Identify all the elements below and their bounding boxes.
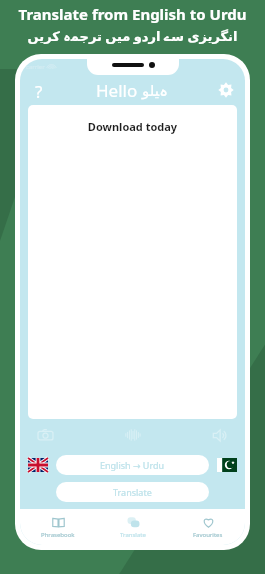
button[interactable]: English → Urdu xyxy=(56,455,209,475)
button[interactable]: Settings xyxy=(216,80,236,100)
staticText: Favourites xyxy=(193,531,223,539)
staticText: انگریزی سے اردو میں ترجمہ کریں xyxy=(0,27,265,45)
button[interactable]: English xyxy=(28,458,48,472)
button[interactable]: Voice input xyxy=(122,424,144,446)
button[interactable]: Help xyxy=(29,80,49,100)
button[interactable]: Download today xyxy=(28,105,237,419)
button[interactable]: Phrasebook xyxy=(20,509,95,545)
staticText: Translate from English to Urdu xyxy=(0,4,265,24)
staticText: Download today xyxy=(28,119,237,134)
button[interactable]: Favourites xyxy=(170,509,245,545)
button[interactable]: Camera xyxy=(34,424,56,446)
staticText: Hello xyxy=(96,79,138,102)
staticText: English → Urdu xyxy=(100,459,165,471)
staticText: ہیلو xyxy=(142,82,169,99)
staticText: Translate xyxy=(120,531,146,539)
button[interactable]: Speak xyxy=(209,424,231,446)
button[interactable]: Translate xyxy=(56,482,209,502)
staticText: Phrasebook xyxy=(41,531,75,539)
staticText: ? xyxy=(35,80,43,100)
button[interactable]: Translate xyxy=(95,509,170,545)
button[interactable]: Urdu xyxy=(217,458,237,472)
staticText: carrier xyxy=(26,63,45,71)
staticText: Translate xyxy=(113,486,152,498)
